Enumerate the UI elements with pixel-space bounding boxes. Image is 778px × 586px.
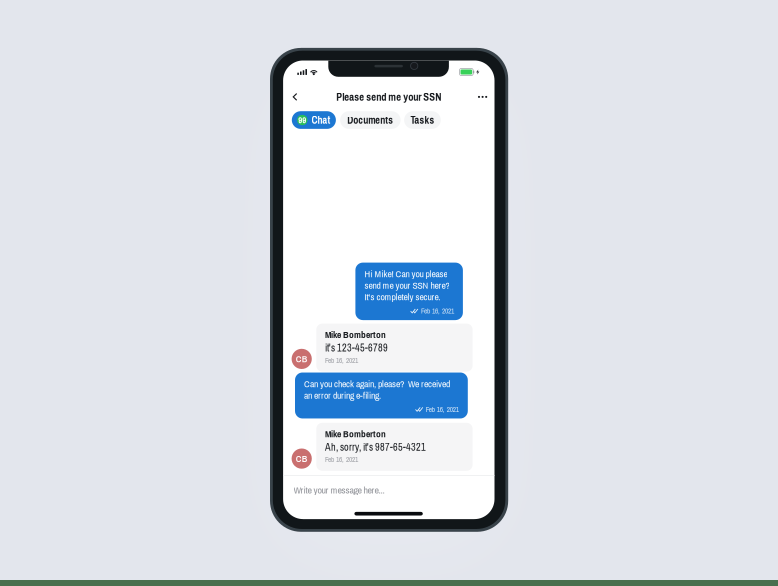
button[interactable]: Tasks — [404, 111, 441, 129]
staticText: Chat — [312, 114, 331, 126]
staticText: Can you check again, please? We received — [304, 378, 450, 389]
button[interactable]: More options — [474, 88, 492, 106]
staticText: Ah, sorry, it's 987-65-4321 — [325, 441, 426, 453]
staticText: Please send me your SSN — [336, 91, 441, 103]
staticText: an error during e-filing. — [304, 390, 381, 401]
staticText: Feb 16, 2021 — [325, 455, 358, 464]
button[interactable]: Back — [286, 88, 304, 106]
staticText: Documents — [347, 114, 393, 126]
staticText: Tasks — [410, 114, 434, 126]
staticText: send me your SSN here? — [364, 280, 449, 291]
staticText: It's completely secure. — [364, 291, 440, 302]
staticText: Hi Mike! Can you please — [364, 268, 447, 279]
button[interactable]: Documents — [340, 111, 401, 129]
button[interactable]: Write your message here... — [283, 476, 494, 504]
staticText: Feb 16, 2021 — [325, 356, 358, 364]
staticText: it's 123-45-6789 — [325, 342, 388, 354]
button[interactable]: 99 — [292, 111, 336, 129]
staticText: Mike Bomberton — [325, 329, 386, 340]
staticText: 99 — [298, 115, 306, 125]
staticText: CB — [296, 353, 308, 364]
staticText: Feb 16, 2021 — [421, 307, 454, 315]
staticText: Mike Bomberton — [325, 428, 386, 439]
staticText: Feb 16, 2021 — [426, 405, 459, 413]
staticText: Write your message here... — [294, 484, 385, 496]
staticText: CB — [296, 453, 308, 464]
